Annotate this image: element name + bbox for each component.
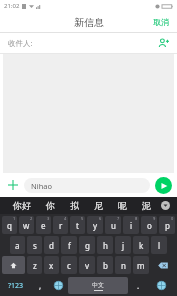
staticText: 6 bbox=[99, 216, 102, 221]
staticText: p bbox=[165, 220, 170, 231]
button[interactable]: e bbox=[36, 216, 51, 234]
button[interactable]: Add attachment bbox=[5, 177, 21, 193]
staticText: 你好 bbox=[13, 200, 31, 211]
staticText: g bbox=[85, 240, 90, 251]
staticText: 你 bbox=[46, 200, 55, 211]
button[interactable]: a bbox=[10, 236, 25, 254]
staticText: q bbox=[7, 220, 12, 231]
staticText: x bbox=[49, 260, 54, 271]
button[interactable]: 你 bbox=[38, 197, 62, 214]
staticText: n bbox=[121, 260, 126, 271]
staticText: , bbox=[39, 280, 42, 291]
staticText: a bbox=[15, 240, 20, 251]
staticText: 3 bbox=[47, 216, 50, 221]
button[interactable]: t bbox=[70, 216, 85, 234]
staticText: y bbox=[93, 220, 98, 231]
staticText: 收件人: bbox=[8, 38, 33, 48]
staticText: 新信息 bbox=[74, 16, 104, 29]
staticText: 2 bbox=[30, 216, 33, 221]
staticText: 0 bbox=[171, 216, 174, 221]
staticText: 8 bbox=[135, 216, 138, 221]
button[interactable]: ?123 bbox=[2, 276, 30, 295]
staticText: 泥 bbox=[142, 200, 151, 211]
staticText: w bbox=[23, 220, 30, 231]
staticText: t bbox=[76, 220, 79, 231]
button[interactable]: 拟 bbox=[62, 197, 86, 214]
button[interactable]: v bbox=[79, 256, 95, 274]
staticText: z bbox=[33, 260, 37, 271]
staticText: u bbox=[111, 220, 116, 231]
button[interactable]: r bbox=[53, 216, 68, 234]
staticText: f bbox=[68, 240, 71, 251]
button[interactable]: b bbox=[97, 256, 113, 274]
staticText: j bbox=[122, 240, 125, 251]
button[interactable]: i bbox=[123, 216, 139, 234]
button[interactable]: Shift bbox=[2, 256, 25, 274]
staticText: k bbox=[139, 240, 144, 251]
button[interactable]: . bbox=[130, 276, 146, 295]
staticText: 呢 bbox=[118, 200, 127, 211]
button[interactable]: p bbox=[159, 216, 175, 234]
button[interactable]: j bbox=[115, 236, 131, 254]
button[interactable]: Expand suggestions bbox=[158, 197, 172, 214]
staticText: o bbox=[147, 220, 152, 231]
staticText: 1 bbox=[13, 216, 16, 221]
button[interactable]: Add recipient bbox=[156, 36, 170, 50]
button[interactable]: 尼 bbox=[86, 197, 110, 214]
button[interactable]: o bbox=[141, 216, 157, 234]
button[interactable]: k bbox=[133, 236, 149, 254]
button[interactable]: 泥 bbox=[134, 197, 158, 214]
button[interactable]: f bbox=[61, 236, 77, 254]
button[interactable]: z bbox=[27, 256, 42, 274]
button[interactable]: w bbox=[19, 216, 34, 234]
button[interactable]: h bbox=[97, 236, 113, 254]
staticText: 7 bbox=[117, 216, 120, 221]
button[interactable]: q bbox=[2, 216, 17, 234]
staticText: m bbox=[137, 260, 145, 271]
button[interactable]: Backspace bbox=[151, 256, 175, 274]
button[interactable]: u bbox=[105, 216, 121, 234]
button[interactable]: 取消 bbox=[145, 14, 177, 30]
staticText: 取消 bbox=[153, 17, 169, 27]
button[interactable]: Send bbox=[155, 177, 172, 194]
staticText: 9 bbox=[153, 216, 156, 221]
button[interactable]: n bbox=[115, 256, 131, 274]
button[interactable]: 收件人: bbox=[0, 33, 177, 53]
staticText: v bbox=[85, 260, 90, 271]
button[interactable]: m bbox=[133, 256, 149, 274]
button[interactable]: x bbox=[44, 256, 59, 274]
staticText: 中文 bbox=[92, 281, 104, 289]
button[interactable]: Switch input language bbox=[50, 276, 66, 295]
staticText: 拟 bbox=[70, 200, 79, 211]
button[interactable]: 你好 bbox=[5, 197, 38, 214]
button[interactable]: c bbox=[61, 256, 77, 274]
button[interactable]: 中文 bbox=[68, 277, 128, 294]
staticText: l bbox=[158, 240, 161, 251]
button[interactable]: , bbox=[32, 276, 48, 295]
button[interactable]: l bbox=[151, 236, 167, 254]
staticText: h bbox=[103, 240, 108, 251]
staticText: d bbox=[49, 240, 54, 251]
staticText: ?123 bbox=[8, 281, 24, 291]
button[interactable]: d bbox=[44, 236, 59, 254]
button[interactable]: 呢 bbox=[110, 197, 134, 214]
button[interactable]: Emoji bbox=[148, 276, 175, 295]
staticText: . bbox=[137, 280, 140, 291]
staticText: r bbox=[59, 220, 63, 231]
staticText: e bbox=[41, 220, 46, 231]
staticText: 21:02 bbox=[4, 2, 20, 10]
staticText: i bbox=[130, 220, 133, 231]
staticText: 4 bbox=[64, 216, 67, 221]
button[interactable]: g bbox=[79, 236, 95, 254]
staticText: b bbox=[103, 260, 108, 271]
staticText: s bbox=[33, 240, 37, 251]
staticText: c bbox=[67, 260, 71, 271]
button[interactable]: y bbox=[87, 216, 103, 234]
button[interactable]: s bbox=[27, 236, 42, 254]
staticText: Nihao bbox=[31, 181, 53, 191]
button[interactable]: Nihao bbox=[24, 178, 150, 193]
staticText: 尼 bbox=[94, 200, 103, 211]
staticText: 5 bbox=[81, 216, 84, 221]
